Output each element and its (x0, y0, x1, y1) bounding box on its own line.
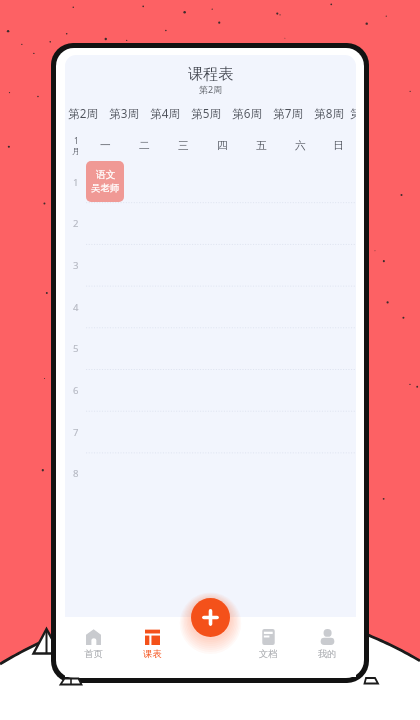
staticText: 第2周 (199, 83, 223, 95)
staticText: 1 (74, 135, 79, 146)
staticText: 吴老师 (91, 182, 120, 194)
staticText: 四 (217, 139, 228, 152)
staticText: 第6周 (232, 105, 263, 121)
staticText: 3 (73, 259, 79, 272)
button[interactable]: 课表 (126, 629, 178, 665)
staticText: 月 (72, 146, 80, 156)
button[interactable]: 第7周 (268, 102, 309, 123)
staticText: 第2周 (68, 105, 99, 121)
button[interactable]: 第2周 (63, 102, 104, 123)
button[interactable]: 我的 (301, 629, 353, 665)
staticText: 8 (73, 467, 79, 480)
button[interactable]: 第5周 (186, 102, 227, 123)
staticText: 2 (73, 217, 79, 230)
staticText: 六 (295, 139, 306, 152)
staticText: 4 (73, 301, 79, 314)
staticText: 课表 (143, 648, 162, 660)
button[interactable]: 第3周 (104, 102, 145, 123)
button[interactable]: 首页 (67, 629, 119, 665)
button[interactable]: 第9周 (350, 102, 356, 123)
button[interactable]: 第4周 (145, 102, 186, 123)
staticText: 第5周 (191, 105, 222, 121)
staticText: 第3周 (109, 105, 140, 121)
staticText: 第8周 (314, 105, 345, 121)
button[interactable]: 文档 (242, 629, 294, 665)
staticText: 文档 (259, 648, 278, 660)
staticText: 课程表 (188, 64, 234, 83)
staticText: 首页 (84, 648, 103, 660)
staticText: 7 (73, 426, 79, 439)
staticText: 第9周 (350, 105, 356, 121)
staticText: 第7周 (273, 105, 304, 121)
staticText: 我的 (318, 648, 337, 660)
staticText: 日 (333, 139, 344, 152)
staticText: 6 (73, 384, 79, 397)
button[interactable]: 语文 (86, 161, 124, 202)
staticText: 5 (73, 342, 79, 355)
staticText: 第4周 (150, 105, 181, 121)
button[interactable]: Add course (191, 598, 230, 637)
staticText: 一 (100, 139, 111, 152)
staticText: 1 (73, 176, 79, 189)
button[interactable]: 第6周 (227, 102, 268, 123)
staticText: 五 (256, 139, 267, 152)
button[interactable]: 第8周 (309, 102, 350, 123)
staticText: 语文 (96, 169, 116, 181)
staticText: 三 (178, 139, 189, 152)
staticText: 二 (139, 139, 150, 152)
